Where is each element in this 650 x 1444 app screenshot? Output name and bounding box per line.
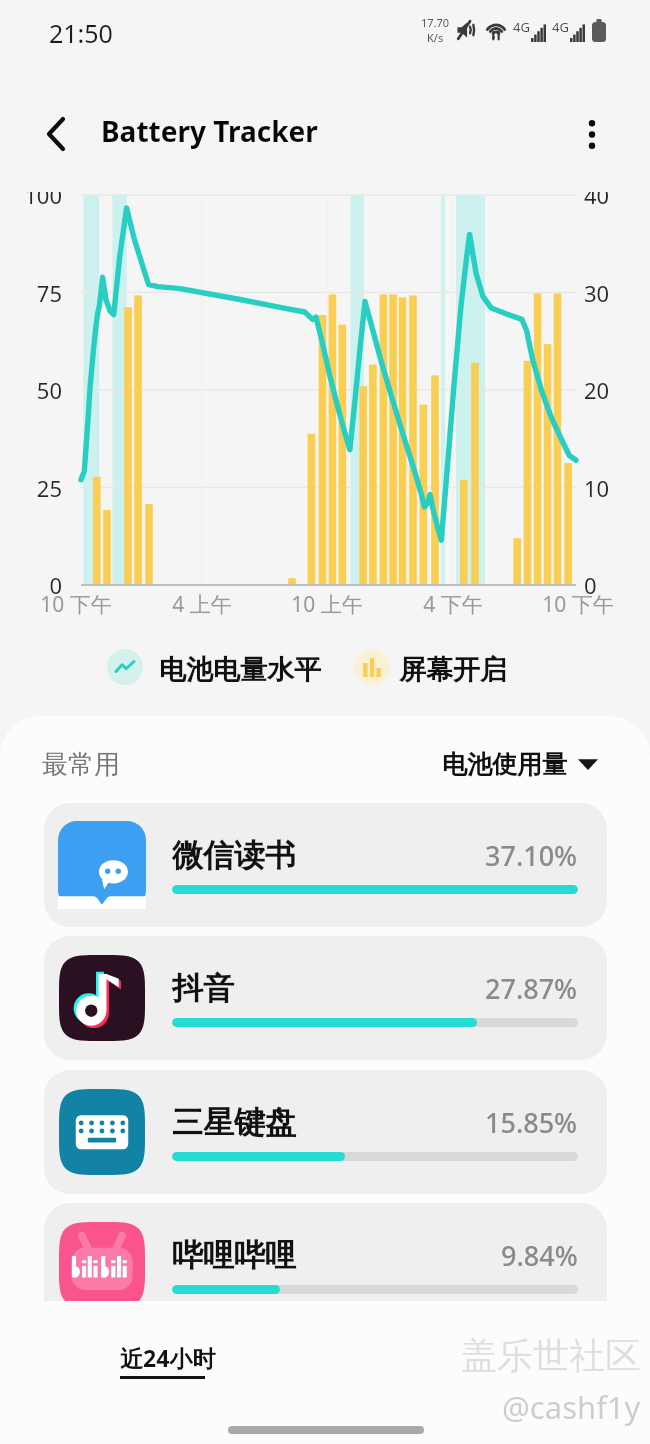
staticText: 0 (584, 570, 648, 600)
staticText: 30 (584, 278, 648, 308)
staticText: 21:50 (49, 16, 113, 50)
staticText: 0 (0, 570, 62, 600)
button[interactable]: 哔哩哔哩 (44, 1203, 607, 1301)
staticText: 最常用 (42, 748, 120, 781)
staticText: K/s (427, 30, 444, 45)
staticText: 75 (0, 278, 62, 308)
button[interactable]: 微信读书 (44, 803, 607, 927)
staticText: 电池电量水平 (159, 653, 321, 687)
staticText: 抖音 (172, 969, 234, 1008)
staticText: 4G (513, 18, 530, 36)
staticText: 10 下午 (16, 590, 136, 619)
staticText: 10 (584, 473, 648, 503)
button[interactable]: 电池使用量 (442, 749, 598, 780)
staticText: 27.87% (485, 970, 578, 1007)
button[interactable]: Back (28, 106, 84, 162)
staticText: 4 上午 (142, 590, 262, 619)
staticText: 17.70 (421, 15, 450, 30)
button[interactable]: 三星键盘 (44, 1070, 607, 1194)
staticText: 4 下午 (393, 590, 513, 619)
staticText: 9.84% (501, 1237, 578, 1274)
staticText: 哔哩哔哩 (172, 1236, 296, 1275)
staticText: 100 (0, 192, 62, 210)
button[interactable]: More options (564, 106, 620, 162)
staticText: 10 下午 (518, 590, 638, 619)
staticText: 屏幕开启 (399, 653, 507, 687)
staticText: 25 (0, 473, 62, 503)
staticText: 40 (584, 192, 648, 210)
staticText: 15.85% (485, 1104, 578, 1141)
staticText: 37.10% (485, 837, 578, 874)
staticText: 4G (552, 18, 569, 36)
staticText: 20 (584, 375, 648, 405)
staticText: @cashf1y (502, 1386, 641, 1428)
staticText: 50 (0, 375, 62, 405)
button[interactable]: 近24小时 (120, 1342, 216, 1379)
staticText: Battery Tracker (101, 112, 318, 150)
staticText: 微信读书 (172, 836, 296, 875)
staticText: 三星键盘 (172, 1103, 296, 1142)
staticText: 盖乐世社区 (461, 1333, 641, 1378)
staticText: 10 上午 (267, 590, 387, 619)
button[interactable]: 抖音 (44, 936, 607, 1060)
staticText: 近24小时 (120, 1342, 216, 1373)
staticText: 电池使用量 (442, 749, 567, 780)
